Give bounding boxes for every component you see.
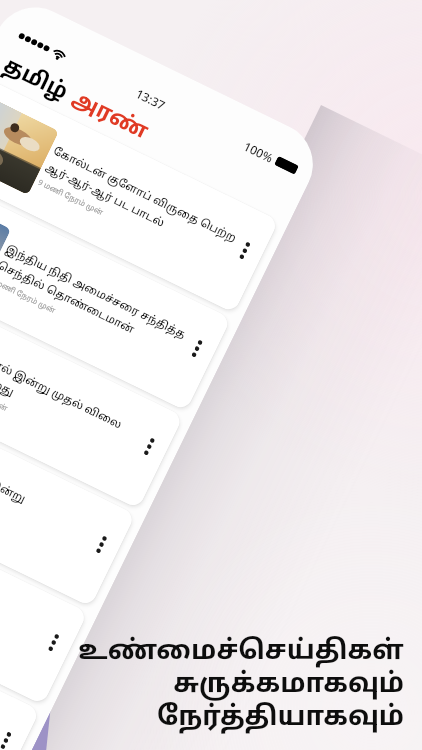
staticText: உண்மைச்செய்திகள் bbox=[78, 636, 404, 669]
staticText: 100% bbox=[241, 138, 276, 166]
button[interactable]: More options bbox=[0, 713, 26, 750]
staticText: நேர்த்தியாகவும் bbox=[157, 702, 404, 735]
button[interactable]: பெட்ரோல் இன்று முதல் விலை குறைகிறது bbox=[0, 274, 183, 509]
staticText: இந்திய நிதி அமைச்சரை சந்தித்த செந்தில் த… bbox=[0, 242, 188, 358]
staticText: சுருக்கமாகவும் bbox=[173, 669, 404, 702]
staticText: 13:37 bbox=[133, 85, 168, 113]
staticText: கோல்டன் குளோப் விருதை பெற்ற ஆர்-ஆர்-ஆர் … bbox=[43, 144, 238, 262]
staticText: அரண் bbox=[67, 86, 152, 146]
button[interactable]: More options bbox=[81, 517, 121, 572]
button[interactable]: More options bbox=[33, 615, 74, 670]
staticText: 9 மணி நேரம் முன் bbox=[37, 178, 105, 217]
button[interactable]: More options bbox=[176, 321, 217, 376]
staticText: பெட்ரோல் இன்று முதல் விலை குறைகிறது bbox=[0, 340, 124, 449]
button[interactable]: சென்னையில் இன்று மழைக்கு வாய்ப்பு bbox=[0, 372, 136, 607]
button[interactable]: கோல்டன் குளோப் விருதை பெற்ற ஆர்-ஆர்-ஆர் … bbox=[0, 78, 279, 313]
button[interactable]: More options bbox=[224, 223, 265, 278]
staticText: சென்னையில் இன்று மழைக்கு வாய்ப்பு bbox=[0, 438, 28, 523]
button[interactable]: புதிய திட்டம் அறிவிப்பு வெளியானது bbox=[0, 470, 88, 705]
button[interactable]: இந்திய நிதி அமைச்சரை சந்தித்த செந்தில் த… bbox=[0, 176, 231, 411]
staticText: தமிழ் bbox=[0, 53, 72, 107]
staticText: 9 மணி நேரம் முன் bbox=[0, 374, 10, 413]
staticText: 9 மணி நேரம் முன் bbox=[0, 276, 58, 315]
button[interactable]: விளையாட்டு சாதனை படைத்த வீரர் bbox=[0, 567, 40, 750]
button[interactable]: More options bbox=[128, 419, 169, 474]
